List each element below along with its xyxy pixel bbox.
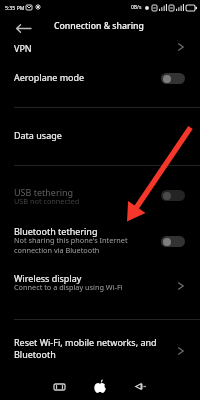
staticText: Bluetooth: [14, 348, 56, 360]
staticText: USB tethering: [14, 186, 74, 198]
button[interactable]: [0, 328, 200, 366]
button[interactable]: Recents: [47, 374, 71, 398]
staticText: connection via Bluetooth: [14, 245, 100, 255]
button[interactable]: Home: [88, 374, 112, 398]
staticText: 5:35 PM: [5, 4, 25, 11]
button[interactable]: [0, 36, 200, 58]
button[interactable]: Toggle: [161, 190, 185, 201]
button[interactable]: [0, 178, 200, 208]
button[interactable]: [0, 118, 200, 146]
staticText: Bluetooth tethering: [14, 225, 98, 237]
other: Open: [176, 42, 186, 52]
staticText: Reset Wi-Fi, mobile networks, and: [14, 336, 157, 348]
button[interactable]: Toggle: [161, 73, 185, 84]
button[interactable]: [0, 266, 200, 300]
button[interactable]: Toggle: [161, 236, 185, 247]
staticText: Connect to a display using Wi-Fi: [14, 282, 123, 292]
button[interactable]: Back: [13, 18, 33, 38]
staticText: Connection & sharing: [54, 20, 144, 32]
button[interactable]: [0, 216, 200, 263]
staticText: Wireless display: [14, 272, 82, 284]
button[interactable]: [0, 62, 200, 90]
staticText: USB not connected: [14, 196, 80, 206]
button[interactable]: Back: [128, 374, 152, 398]
staticText: VPN: [14, 42, 32, 54]
staticText: 0B/s: [131, 4, 142, 11]
staticText: Not sharing this phone's Internet: [14, 235, 128, 245]
staticText: Data usage: [14, 129, 62, 141]
other: Open: [176, 281, 186, 291]
other: Open: [176, 346, 186, 356]
staticText: Aeroplane mode: [14, 71, 85, 83]
